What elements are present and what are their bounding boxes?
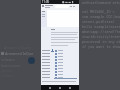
staticText: Answered InQue: [5, 51, 34, 56]
button[interactable]: Account: [28, 57, 35, 64]
staticText: software: [1, 57, 15, 61]
staticText: processed in any other: [82, 39, 120, 44]
staticText: ● ▬ ▬ ▮: [62, 0, 74, 4]
staticText: intent.putExtra(: [82, 19, 115, 24]
staticText: onStartCommand returns: [82, 0, 120, 5]
staticText: hello example/assets: [82, 24, 120, 29]
staticText: 11:05: [42, 0, 50, 4]
staticText: whatsapp://send/?tex: [82, 29, 120, 34]
staticText: startActivity(intent): [82, 34, 120, 39]
staticText: com.example.CDC.body: [82, 14, 120, 19]
staticText: val MESSAGE_ID =: [82, 9, 115, 14]
staticText: how it menu: [1, 63, 21, 67]
staticText: if you want to show: [82, 44, 120, 49]
